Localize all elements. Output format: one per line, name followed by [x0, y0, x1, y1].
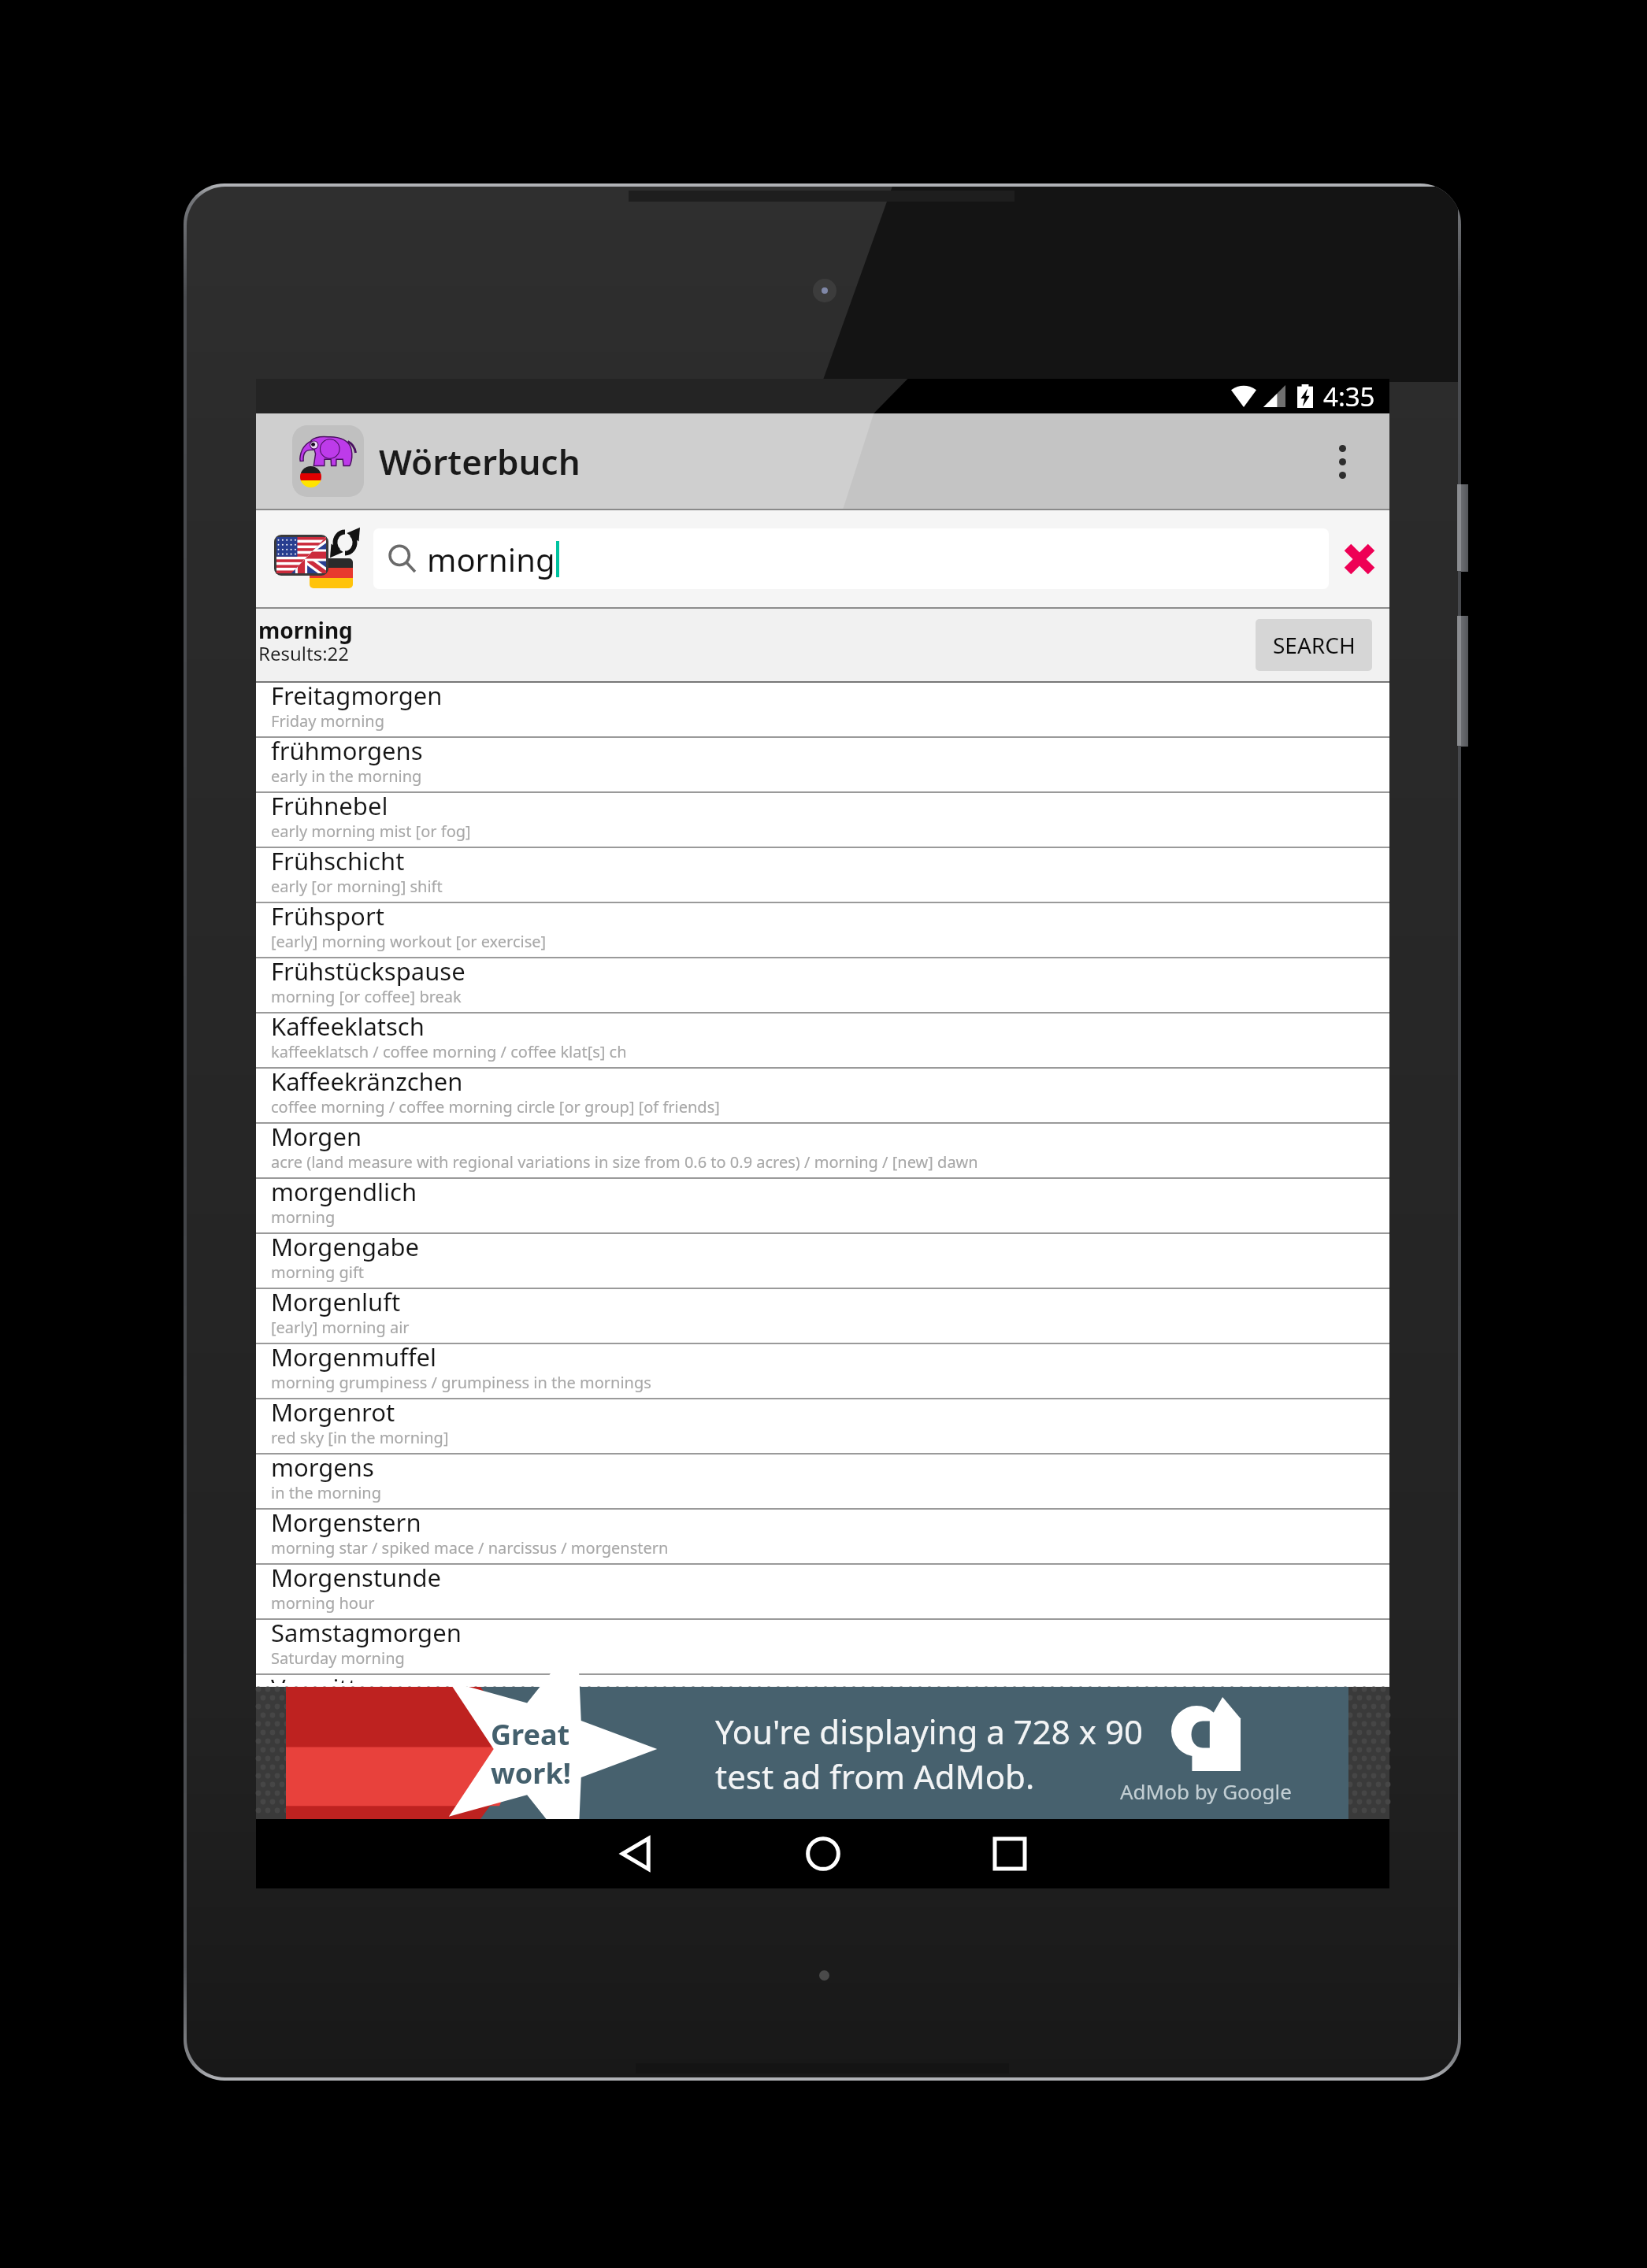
button[interactable]: Frühschicht: [256, 848, 1389, 902]
staticText: Kaffeeklatsch: [271, 1010, 425, 1043]
staticText: early morning mist [or fog]: [271, 821, 471, 842]
button[interactable]: Frühsport: [256, 903, 1389, 957]
staticText: SEARCH: [1273, 630, 1356, 660]
staticText: red sky [in the morning]: [271, 1427, 449, 1448]
button[interactable]: Morgenluft: [256, 1289, 1389, 1343]
staticText: Frühstückspause: [271, 954, 466, 988]
staticText: kaffeeklatsch / coffee morning / coffee …: [271, 1041, 627, 1062]
staticText: morning grumpiness / grumpiness in the m…: [271, 1372, 651, 1393]
staticText: morning gift: [271, 1262, 364, 1283]
staticText: Great: [491, 1715, 570, 1754]
staticText: Morgenstern: [271, 1506, 421, 1539]
staticText: [early] morning air: [271, 1317, 410, 1338]
button[interactable]: Frühnebel: [256, 793, 1389, 847]
staticText: Freitagmorgen: [271, 679, 443, 712]
staticText: early in the morning: [271, 765, 422, 787]
staticText: Saturday morning: [271, 1647, 405, 1669]
button[interactable]: Clear search: [1329, 528, 1389, 589]
button[interactable]: Morgenstunde: [256, 1565, 1389, 1618]
staticText: [early] morning workout [or exercise]: [271, 931, 547, 952]
button[interactable]: Home: [788, 1819, 859, 1888]
button[interactable]: Freitagmorgen: [256, 683, 1389, 736]
staticText: test ad from AdMob.: [715, 1754, 1035, 1799]
staticText: Morgen: [271, 1120, 362, 1153]
staticText: AdMob by Google: [1120, 1777, 1292, 1805]
staticText: late morning / morning: [271, 1703, 445, 1714]
staticText: morgendlich: [271, 1175, 417, 1208]
staticText: Morgenrot: [271, 1395, 395, 1429]
button[interactable]: Swap languages: [269, 510, 360, 607]
button[interactable]: Morgengabe: [256, 1234, 1389, 1288]
staticText: morgens: [271, 1451, 374, 1484]
staticText: morning: [271, 1206, 336, 1228]
staticText: Morgenmuffel: [271, 1340, 437, 1373]
staticText: in the morning: [271, 1482, 382, 1503]
staticText: morning: [427, 538, 555, 580]
staticText: morning star / spiked mace / narcissus /…: [271, 1537, 669, 1558]
staticText: Vormittag: [271, 1671, 386, 1683]
button[interactable]: Vormittag: [256, 1675, 1389, 1687]
button[interactable]: App icon: [292, 425, 364, 497]
staticText: Morgengabe: [271, 1230, 420, 1263]
button[interactable]: morgens: [256, 1455, 1389, 1508]
staticText: Results:22: [258, 640, 350, 666]
button[interactable]: Samstagmorgen: [256, 1620, 1389, 1673]
button[interactable]: morgendlich: [256, 1179, 1389, 1232]
button[interactable]: morning: [373, 528, 1329, 589]
button[interactable]: Kaffeekränzchen: [256, 1069, 1389, 1122]
button[interactable]: Kaffeeklatsch: [256, 1014, 1389, 1067]
button[interactable]: frühmorgens: [256, 738, 1389, 791]
button[interactable]: SEARCH: [1256, 619, 1372, 671]
button[interactable]: Morgenrot: [256, 1399, 1389, 1453]
staticText: work!: [491, 1754, 571, 1792]
staticText: Samstagmorgen: [271, 1616, 462, 1649]
staticText: 4:35: [1323, 379, 1375, 413]
staticText: Wörterbuch: [379, 438, 581, 485]
staticText: coffee morning / coffee morning circle […: [271, 1096, 720, 1117]
staticText: acre (land measure with regional variati…: [271, 1151, 978, 1173]
button[interactable]: Back: [601, 1819, 672, 1888]
button[interactable]: Morgenmuffel: [256, 1344, 1389, 1398]
button[interactable]: Morgen: [256, 1124, 1389, 1177]
staticText: frühmorgens: [271, 734, 423, 767]
staticText: Frühschicht: [271, 844, 405, 877]
staticText: morning: [258, 615, 353, 645]
button[interactable]: Morgenstern: [256, 1510, 1389, 1563]
staticText: morning [or coffee] break: [271, 986, 462, 1007]
staticText: You're displaying a 728 x 90: [715, 1709, 1143, 1754]
staticText: Frühsport: [271, 899, 384, 932]
staticText: Kaffeekränzchen: [271, 1065, 463, 1098]
staticText: early [or morning] shift: [271, 876, 443, 897]
staticText: Frühnebel: [271, 789, 388, 822]
staticText: Morgenstunde: [271, 1561, 441, 1594]
button[interactable]: Advertisement: You're displaying a 728 x…: [256, 1687, 1389, 1819]
staticText: morning hour: [271, 1592, 375, 1614]
button[interactable]: Frühstückspause: [256, 958, 1389, 1012]
staticText: Friday morning: [271, 710, 384, 732]
button[interactable]: More options: [1312, 432, 1372, 491]
button[interactable]: Recent apps: [974, 1819, 1045, 1888]
staticText: Morgenluft: [271, 1285, 401, 1318]
